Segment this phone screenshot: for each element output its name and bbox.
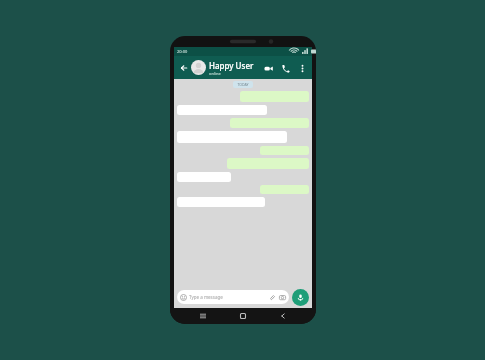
button[interactable]: Type a message xyxy=(177,290,289,304)
staticText: online xyxy=(209,71,221,76)
button[interactable]: Attach xyxy=(268,293,276,301)
staticText: 20:00 xyxy=(177,49,188,54)
button[interactable]: Back xyxy=(276,309,290,323)
button[interactable]: Record voice message xyxy=(292,289,309,306)
button[interactable]: Recent apps xyxy=(196,309,210,323)
staticText: TODAY xyxy=(237,82,249,87)
button[interactable]: Happy User xyxy=(191,56,262,79)
button[interactable]: Call xyxy=(279,62,291,74)
button[interactable]: More options xyxy=(296,62,308,74)
button[interactable]: Home xyxy=(236,309,250,323)
staticText: Type a message xyxy=(189,294,223,300)
button[interactable]: Back xyxy=(177,61,190,74)
button[interactable]: Video call xyxy=(262,62,274,74)
button[interactable]: Camera xyxy=(278,293,286,301)
staticText: Happy User xyxy=(209,60,254,71)
